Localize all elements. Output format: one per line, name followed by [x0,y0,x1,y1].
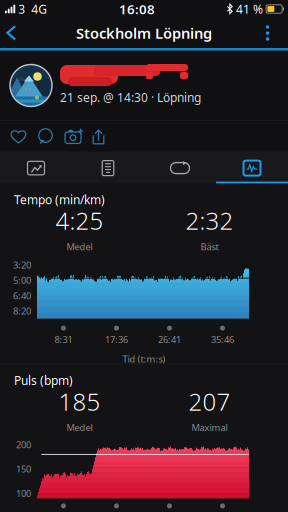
staticText: 35:46 [211,333,234,345]
button[interactable]: Back [0,18,29,48]
staticText: 207 [188,385,230,417]
staticText: 17:36 [105,333,128,345]
staticText: 185 [58,385,100,417]
staticText: 200 [16,438,31,451]
button[interactable]: Laps [144,153,216,184]
staticText: Tid (t:m:s) [122,353,165,365]
staticText: 3:20 [13,259,31,271]
staticText: 3 4G [15,1,47,17]
staticText: Bäst [200,240,218,253]
staticText: 21 sep. @ 14:30 · Löpning [60,89,201,105]
staticText: 26:41 [158,333,181,345]
staticText: 8:20 [13,305,31,317]
staticText: 5:00 [13,274,31,286]
staticText: Maximal [191,421,227,434]
button[interactable]: Comment [32,124,59,149]
staticText: Tempo (min/km) [14,192,105,207]
staticText: Stockholm Löpning [76,23,212,43]
button[interactable]: Add photo [59,124,87,149]
staticText: 2:32 [185,205,233,236]
button[interactable]: Charts [216,153,288,184]
staticText: Puls (bpm) [14,372,73,388]
staticText: 16:08 [119,0,155,18]
button[interactable]: Like [5,124,32,149]
staticText: Medel [66,421,92,434]
staticText: 6:40 [13,289,31,302]
button[interactable]: More options [254,18,288,47]
button[interactable]: Map [0,153,72,184]
staticText: 100 [16,487,31,500]
button[interactable]: Share [87,124,110,149]
staticText: 8:31 [54,333,72,345]
staticText: 4:25 [55,205,103,236]
staticText: 41 % [233,1,263,17]
staticText: 150 [16,463,31,475]
staticText: Medel [66,240,92,253]
button[interactable]: Details [72,153,144,184]
